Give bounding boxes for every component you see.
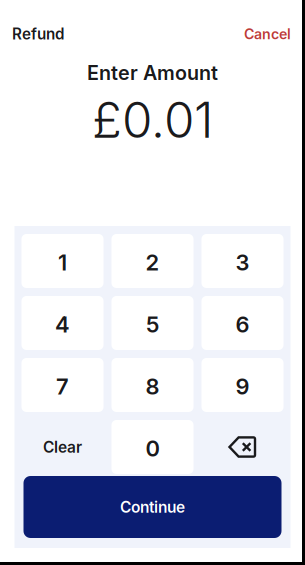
button[interactable]: 9 [201, 358, 283, 412]
staticText: Cancel [244, 25, 291, 42]
button[interactable]: 1 [21, 234, 103, 288]
staticText: Clear [43, 438, 82, 456]
button[interactable]: 0 [111, 420, 193, 474]
staticText: 5 [146, 311, 159, 338]
staticText: 4 [55, 311, 70, 338]
staticText: Continue [120, 498, 185, 516]
staticText: 0 [145, 435, 159, 462]
staticText: 1 [58, 249, 67, 276]
staticText: 8 [145, 373, 159, 400]
button[interactable]: 3 [201, 234, 283, 288]
button[interactable]: 8 [111, 358, 193, 412]
staticText: 6 [235, 311, 249, 338]
button[interactable]: Clear [21, 420, 103, 474]
staticText: 9 [235, 373, 249, 400]
button[interactable]: Refund [12, 25, 64, 43]
button[interactable]: 5 [111, 296, 193, 350]
button[interactable]: 2 [111, 234, 193, 288]
staticText: Enter Amount [87, 61, 218, 85]
button[interactable]: Continue [23, 476, 281, 538]
button[interactable]: Backspace [201, 420, 283, 474]
staticText: 7 [56, 373, 69, 400]
staticText: 3 [235, 249, 249, 276]
button[interactable]: 7 [21, 358, 103, 412]
staticText: 2 [145, 249, 159, 276]
button[interactable]: Cancel [244, 25, 291, 42]
staticText: Refund [12, 25, 64, 43]
staticText: £0.01 [92, 90, 213, 150]
button[interactable]: 6 [201, 296, 283, 350]
button[interactable]: 4 [21, 296, 103, 350]
